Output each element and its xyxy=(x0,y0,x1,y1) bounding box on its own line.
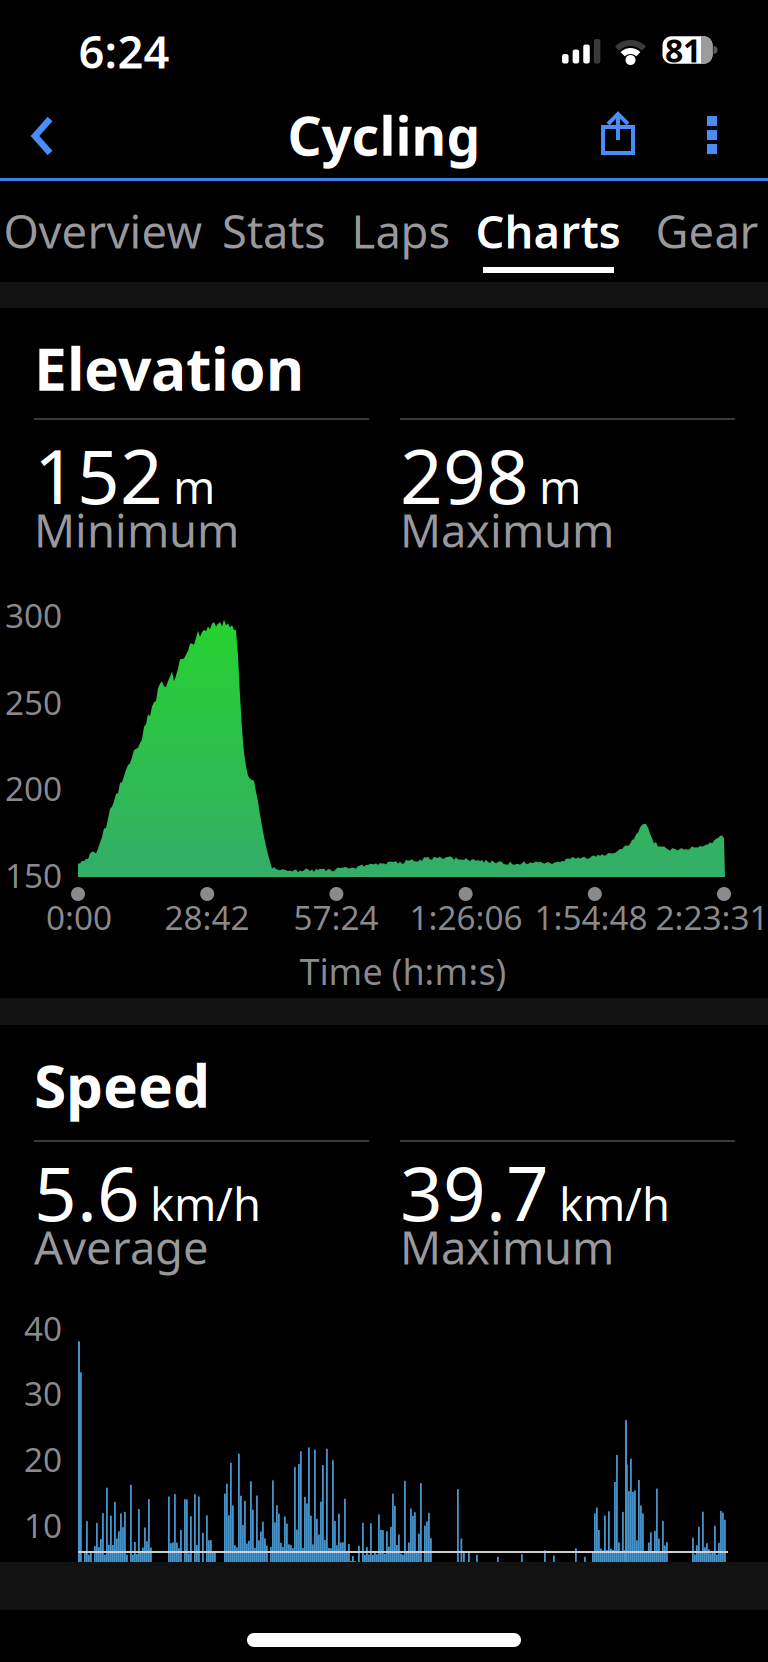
staticText: 250 xyxy=(5,680,62,724)
staticText: 200 xyxy=(5,766,62,810)
staticText: 40 xyxy=(24,1306,62,1350)
staticText: Gear xyxy=(655,201,758,261)
staticText: km/h xyxy=(150,1173,261,1233)
button[interactable]: Back xyxy=(28,112,78,160)
staticText: Overview xyxy=(3,201,202,261)
button[interactable]: Overview xyxy=(0,185,214,277)
staticText: Maximum xyxy=(400,500,614,560)
staticText: 6:24 xyxy=(78,21,169,81)
staticText: 57:24 xyxy=(293,895,378,939)
staticText: km/h xyxy=(559,1173,670,1233)
button[interactable]: Stats xyxy=(210,185,338,277)
staticText: 0:00 xyxy=(46,895,112,939)
staticText: Cycling xyxy=(287,100,480,170)
staticText: 39.7 xyxy=(400,1142,549,1242)
button[interactable]: Share xyxy=(601,113,635,157)
staticText: m xyxy=(539,456,581,516)
staticText: 150 xyxy=(5,853,62,897)
staticText: 2:23:31 xyxy=(655,895,768,939)
staticText: Charts xyxy=(475,201,620,261)
staticText: Speed xyxy=(34,1046,210,1124)
button[interactable]: More xyxy=(707,116,717,154)
staticText: 298 xyxy=(400,425,529,525)
staticText: 1:26:06 xyxy=(409,895,522,939)
staticText: 1:54:48 xyxy=(534,895,647,939)
staticText: 28:42 xyxy=(164,895,249,939)
staticText: Minimum xyxy=(34,500,239,560)
staticText: 152 xyxy=(34,425,163,525)
staticText: Time (h:m:s) xyxy=(299,947,506,995)
staticText: Laps xyxy=(351,201,450,261)
staticText: 300 xyxy=(5,593,62,637)
staticText: Maximum xyxy=(400,1217,614,1277)
staticText: Stats xyxy=(222,201,326,261)
staticText: Average xyxy=(34,1217,209,1277)
staticText: 5.6 xyxy=(34,1142,140,1242)
staticText: 10 xyxy=(24,1503,62,1547)
button[interactable]: Charts xyxy=(463,185,632,277)
staticText: 81 xyxy=(665,29,701,71)
button[interactable]: Laps xyxy=(339,185,462,277)
button[interactable]: Gear xyxy=(643,185,768,277)
staticText: 20 xyxy=(24,1437,62,1481)
staticText: 30 xyxy=(24,1371,62,1415)
staticText: Elevation xyxy=(34,329,304,407)
staticText: m xyxy=(173,456,215,516)
